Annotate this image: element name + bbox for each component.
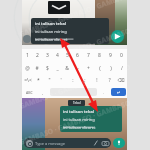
staticText: @ xyxy=(25,65,30,72)
staticText: : xyxy=(72,77,74,84)
button[interactable]: @ xyxy=(22,62,32,74)
button[interactable]: _ xyxy=(52,62,62,74)
button[interactable]: Enter xyxy=(111,88,126,96)
staticText: Type a message xyxy=(35,141,66,146)
staticText: ) xyxy=(110,65,112,72)
button[interactable]: Attach xyxy=(93,140,99,146)
staticText: * xyxy=(37,77,40,84)
staticText: ini tulisan tebal xyxy=(35,21,67,26)
staticText: ini tulisan tebal xyxy=(63,109,95,114)
button[interactable]: ) xyxy=(105,62,116,74)
button[interactable]: ? xyxy=(103,74,115,86)
button[interactable]: ⌫ xyxy=(115,74,127,86)
staticText: , xyxy=(42,90,44,95)
staticText: " xyxy=(48,77,51,84)
button[interactable]: Type a message xyxy=(26,138,109,148)
button[interactable]: Record voice message xyxy=(113,138,125,148)
staticText: 0 xyxy=(120,52,123,59)
staticText: + xyxy=(87,65,90,72)
button[interactable]: 2 xyxy=(32,49,42,62)
button[interactable]: ( xyxy=(94,62,105,74)
staticText: $ xyxy=(46,65,49,72)
button[interactable]: =\< xyxy=(22,74,33,86)
staticText: 2 xyxy=(36,52,39,59)
button[interactable]: # xyxy=(32,62,42,74)
button[interactable]: 4 xyxy=(52,49,62,62)
staticText: 7 xyxy=(87,52,90,59)
staticText: ini tulisan dicoret xyxy=(63,125,96,130)
button[interactable]: ini tulisan tebal xyxy=(31,18,109,44)
button[interactable]: : xyxy=(67,74,79,86)
button[interactable]: & xyxy=(62,62,72,74)
staticText: 3 xyxy=(46,52,49,59)
staticText: ( xyxy=(99,65,101,72)
staticText: ini tulisan miring xyxy=(63,117,95,122)
staticText: Tebal xyxy=(73,101,81,105)
staticText: ini tulisan dicoret xyxy=(35,37,68,42)
staticText: . xyxy=(103,90,105,95)
staticText: ; xyxy=(84,77,86,84)
staticText: 6 xyxy=(76,52,79,59)
staticText: / xyxy=(121,65,123,72)
button[interactable]: , xyxy=(37,86,49,98)
button[interactable]: 7 xyxy=(83,49,94,62)
staticText: 1 xyxy=(26,52,29,59)
staticText: GAMBASO · GAMBASO · GAMBASO xyxy=(3,57,147,117)
staticText: GAMBASO · GAMBASO · GAMBASO xyxy=(3,0,147,45)
staticText: ⌫ xyxy=(117,77,125,83)
staticText: ini tulisan miring xyxy=(35,29,67,34)
button[interactable]: Space xyxy=(50,88,97,96)
button[interactable]: Camera xyxy=(102,140,109,147)
button[interactable]: Send xyxy=(111,30,124,43)
staticText: 5 xyxy=(66,52,69,59)
staticText: GAMBASO · GAMBASO · GAMBASO xyxy=(3,21,147,81)
staticText: # xyxy=(35,65,39,72)
button[interactable]: 1 xyxy=(22,49,32,62)
button[interactable]: 6 xyxy=(72,49,83,62)
staticText: ! xyxy=(96,77,98,84)
button[interactable]: 9 xyxy=(105,49,116,62)
button[interactable]: $ xyxy=(42,62,52,74)
staticText: 8 xyxy=(98,52,101,59)
button[interactable]: * xyxy=(33,74,44,86)
button[interactable]: - xyxy=(72,62,83,74)
staticText: & xyxy=(65,65,69,72)
staticText: 4 xyxy=(56,52,59,59)
staticText: ABC xyxy=(26,90,33,95)
button[interactable]: 5 xyxy=(62,49,72,62)
staticText: 9 xyxy=(109,52,112,59)
button[interactable]: ' xyxy=(55,74,67,86)
button[interactable]: 0 xyxy=(116,49,127,62)
button[interactable]: 8 xyxy=(94,49,105,62)
staticText: ? xyxy=(108,77,111,84)
button[interactable]: ; xyxy=(79,74,91,86)
staticText: ↵ xyxy=(117,90,121,95)
staticText: ' xyxy=(60,77,62,84)
staticText: =\< xyxy=(24,77,32,84)
button[interactable]: / xyxy=(116,62,127,74)
button[interactable]: " xyxy=(44,74,55,86)
button[interactable]: ini tulisan tebal xyxy=(60,106,122,132)
button[interactable]: ABC xyxy=(22,86,37,98)
button[interactable]: + xyxy=(83,62,94,74)
staticText: GAMBASO · GAMBASO · GAMBASO xyxy=(3,93,147,150)
button[interactable]: ! xyxy=(91,74,103,86)
staticText: - xyxy=(77,65,79,72)
staticText: _ xyxy=(56,65,59,72)
button[interactable]: 3 xyxy=(42,49,52,62)
